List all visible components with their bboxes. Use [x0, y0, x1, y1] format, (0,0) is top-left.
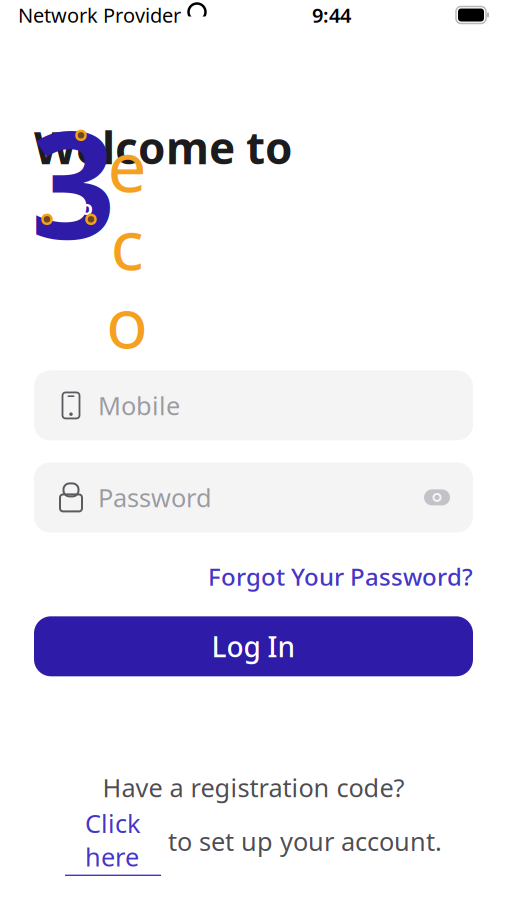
staticText: Click here: [85, 806, 141, 874]
staticText: e: [107, 119, 146, 211]
staticText: Have a registration code?: [102, 771, 404, 804]
staticText: SPro: [48, 194, 93, 221]
button[interactable]: Log In: [34, 616, 473, 676]
staticText: o: [106, 275, 148, 368]
staticText: Forgot Your Password?: [208, 560, 473, 592]
staticText: c: [110, 197, 143, 289]
staticText: 3: [30, 82, 115, 280]
staticText: 9:44: [312, 2, 351, 28]
staticText: to set up your account.: [161, 824, 442, 858]
staticText: Log In: [211, 628, 295, 665]
staticText: Password: [98, 481, 212, 514]
staticText: Mobile: [98, 389, 180, 422]
button[interactable]: Password: [34, 462, 473, 532]
button[interactable]: Mobile: [34, 370, 473, 440]
staticText: Network Provider: [18, 2, 181, 28]
button[interactable]: Forgot Your Password?: [208, 554, 473, 598]
button[interactable]: Click here: [65, 806, 442, 876]
staticText: Welcome to: [34, 118, 293, 176]
